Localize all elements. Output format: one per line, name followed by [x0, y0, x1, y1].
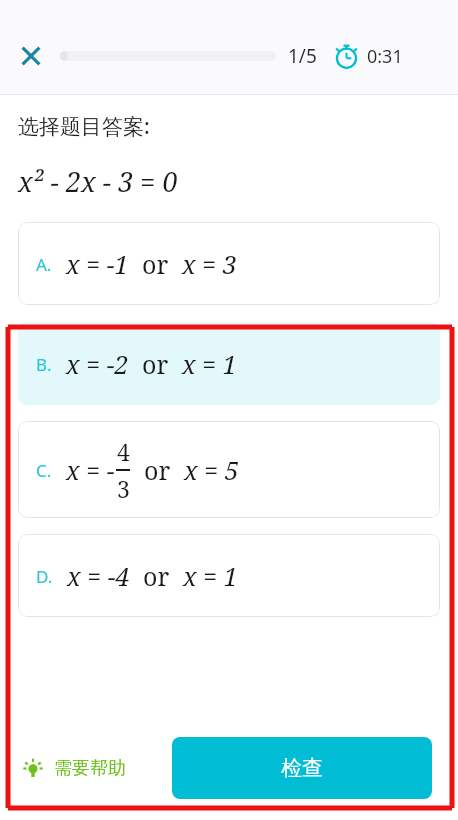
staticText: x = −4: [67, 559, 130, 593]
staticText: 3: [117, 473, 130, 504]
staticText: x = −1: [66, 247, 129, 281]
button[interactable]: B.: [18, 322, 440, 405]
staticText: x = 5: [184, 453, 239, 487]
button[interactable]: Close: [10, 35, 52, 77]
staticText: A.: [36, 253, 52, 276]
button[interactable]: D.: [18, 534, 440, 617]
staticText: x = 3: [182, 247, 237, 281]
staticText: or: [129, 347, 182, 381]
staticText: or: [130, 559, 183, 593]
staticText: 0:31: [367, 44, 403, 69]
staticText: or: [129, 247, 182, 281]
staticText: 4: [117, 436, 130, 467]
staticText: B.: [36, 353, 52, 376]
staticText: 1/5: [288, 43, 317, 69]
button[interactable]: A.: [18, 222, 440, 305]
staticText: D.: [36, 565, 53, 588]
staticText: x = −2: [66, 347, 129, 381]
button[interactable]: 需要帮助: [18, 747, 128, 789]
staticText: x² − 2x − 3 = 0: [18, 163, 178, 200]
staticText: 检查: [281, 755, 323, 781]
staticText: or: [131, 453, 184, 487]
staticText: x = 1: [183, 559, 238, 593]
staticText: C.: [36, 459, 52, 482]
button[interactable]: C.: [18, 421, 440, 518]
staticText: x = 1: [182, 347, 237, 381]
staticText: x = −: [66, 453, 115, 487]
button[interactable]: 检查: [172, 737, 432, 799]
button[interactable]: Timer: [333, 43, 403, 70]
staticText: 选择题目答案:: [18, 112, 150, 141]
staticText: 需要帮助: [54, 757, 126, 780]
